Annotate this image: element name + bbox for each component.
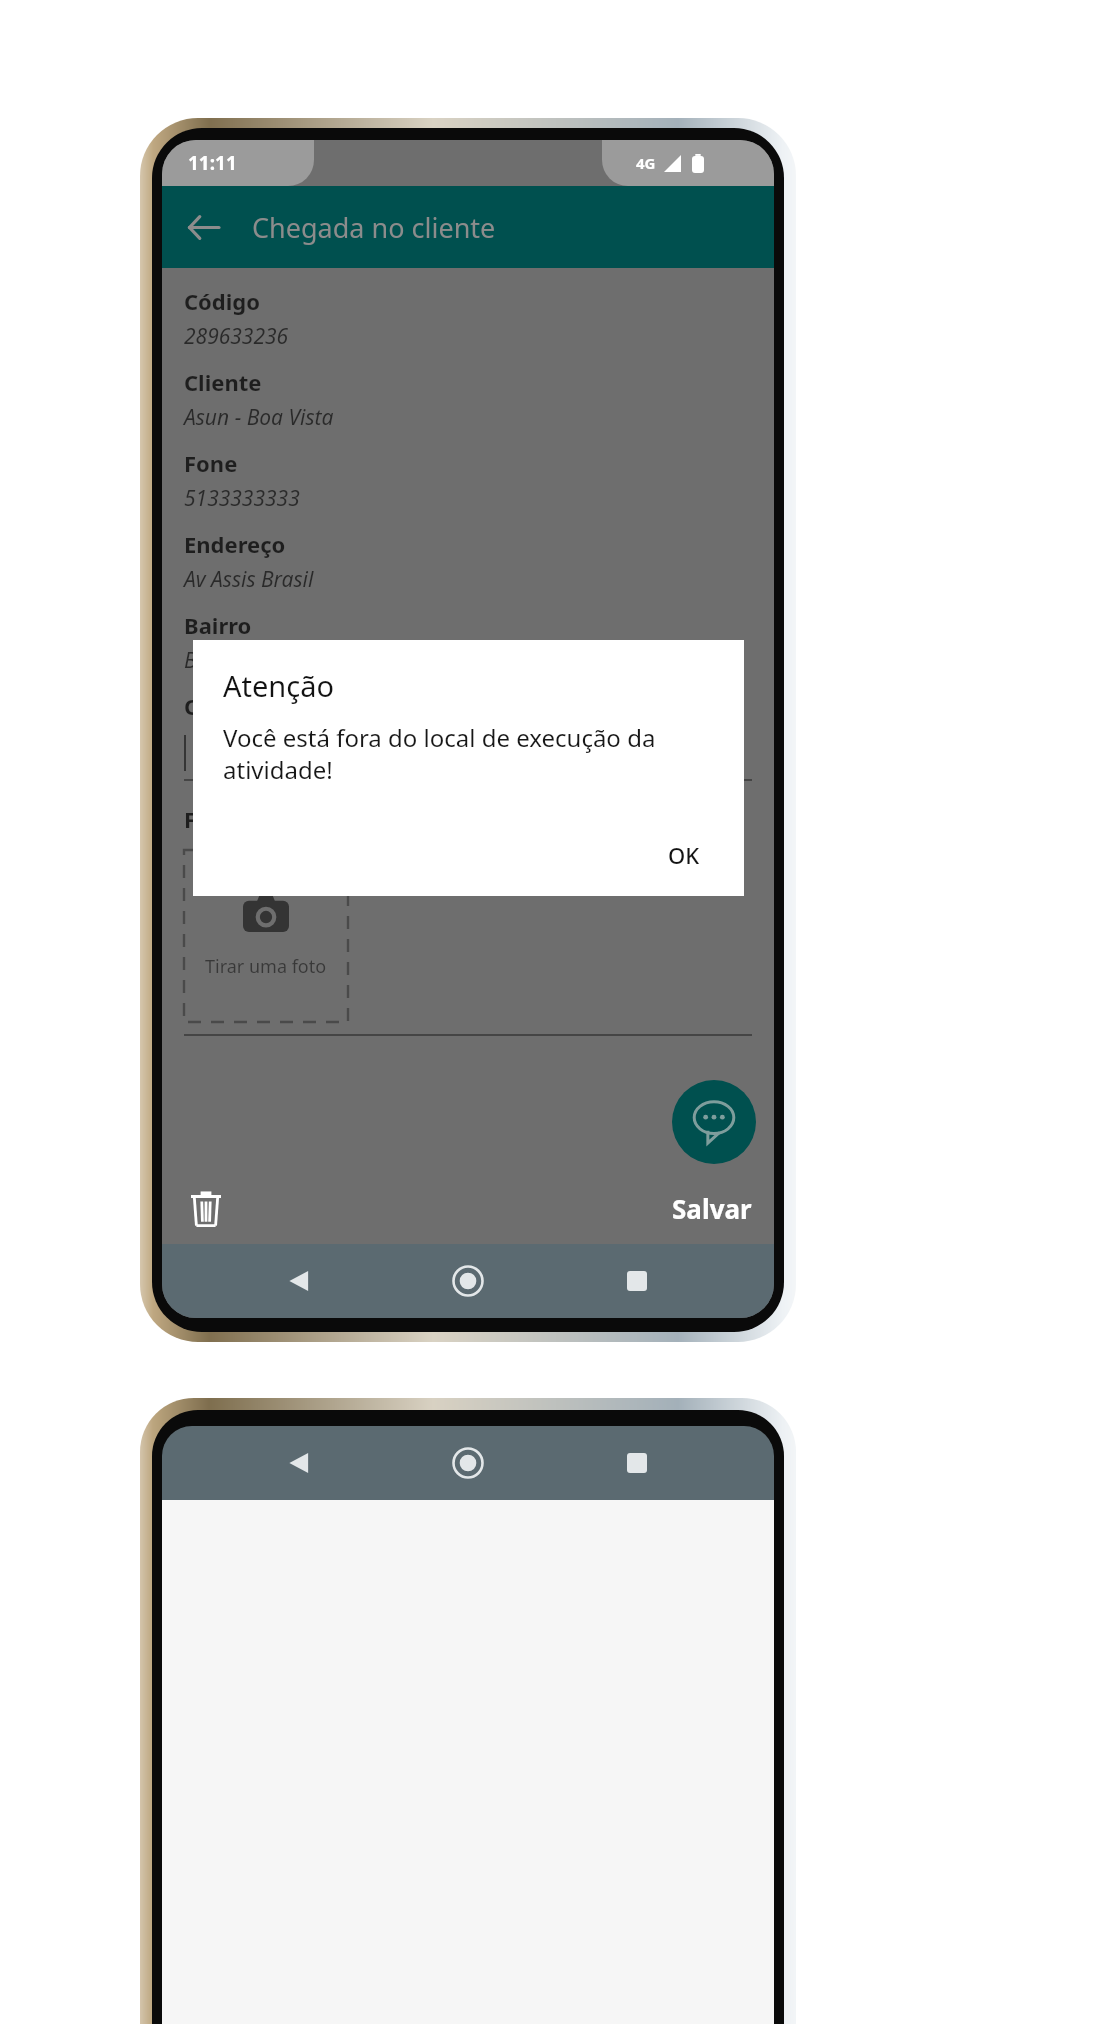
button[interactable]: Home xyxy=(436,1249,500,1313)
staticText: 4G xyxy=(636,153,656,173)
staticText: Atenção xyxy=(223,666,335,705)
staticText: Bairro xyxy=(184,610,252,640)
staticText: Endereço xyxy=(184,529,286,559)
button[interactable]: Recents xyxy=(605,1431,669,1495)
staticText: Boa Vista xyxy=(184,646,271,675)
staticText: Código xyxy=(184,286,261,316)
staticText: 5133333333 xyxy=(184,484,300,513)
button[interactable]: Back xyxy=(267,1431,331,1495)
button[interactable]: Back xyxy=(267,1249,331,1313)
button[interactable]: Home xyxy=(436,1431,500,1495)
staticText: Cliente xyxy=(184,367,262,397)
staticText: Tirar uma foto xyxy=(205,954,327,979)
staticText: Observação xyxy=(184,691,314,721)
staticText: Foto xyxy=(184,804,234,834)
button[interactable]: Delete xyxy=(178,1180,234,1236)
button[interactable]: Tirar uma foto xyxy=(184,850,348,1022)
staticText: Salvar xyxy=(672,1191,752,1226)
staticText: Av Assis Brasil xyxy=(184,565,314,594)
button[interactable]: Salvar xyxy=(650,1179,774,1238)
staticText: Chegada no cliente xyxy=(252,209,496,246)
staticText: OK xyxy=(668,840,700,870)
staticText: Você está fora do local de execução da a… xyxy=(223,721,720,786)
staticText: 11:11 xyxy=(188,150,237,176)
staticText: 289633236 xyxy=(184,322,289,351)
button[interactable]: Back xyxy=(174,198,232,256)
button[interactable]: Recents xyxy=(605,1249,669,1313)
button[interactable]: Chat xyxy=(672,1080,756,1164)
button[interactable]: OK xyxy=(648,830,720,880)
staticText: Asun - Boa Vista xyxy=(184,403,334,432)
staticText: Fone xyxy=(184,448,238,478)
